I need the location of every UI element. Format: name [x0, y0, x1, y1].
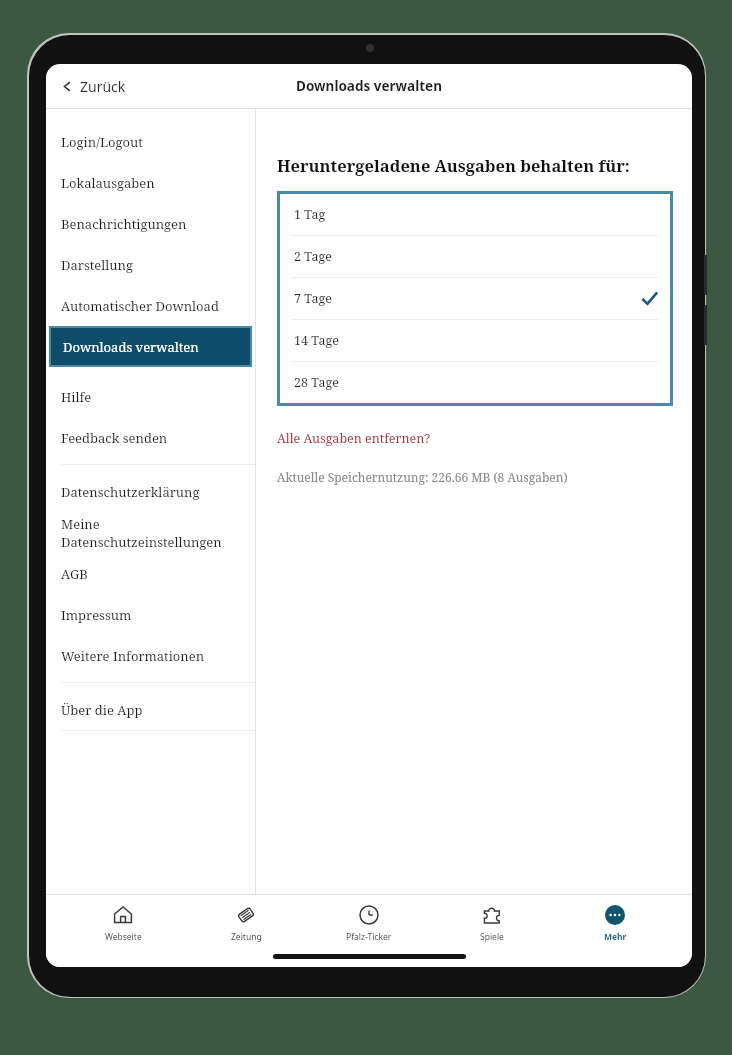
staticText: Impressum [61, 606, 132, 624]
button[interactable]: 7 Tage [280, 278, 670, 319]
staticText: Benachrichtigungen [61, 215, 187, 233]
button[interactable]: Downloads verwalten [51, 328, 250, 365]
staticText: Automatischer Download [61, 297, 219, 315]
button[interactable]: 2 Tage [280, 236, 670, 277]
staticText: Downloads verwalten [63, 338, 199, 356]
staticText: Zeitung [231, 931, 262, 943]
staticText: Meine Datenschutzeinstellungen [61, 515, 255, 551]
staticText: Heruntergeladene Ausgaben behalten für: [277, 154, 630, 176]
staticText: Spiele [480, 931, 504, 943]
staticText: Mehr [604, 931, 627, 943]
staticText: Über die App [61, 701, 143, 719]
button[interactable]: Datenschutzerklärung [46, 471, 255, 512]
staticText: Darstellung [61, 256, 133, 274]
other: Zeitung [236, 905, 256, 925]
button[interactable]: AGB [46, 553, 255, 594]
staticText: Aktuelle Speichernutzung: 226.66 MB (8 A… [277, 469, 568, 485]
button[interactable]: Login/Logout [46, 121, 255, 162]
staticText: Alle Ausgaben entfernen? [277, 430, 431, 447]
button[interactable]: Zeitung [200, 902, 292, 945]
button[interactable]: Pfalz-Ticker [323, 902, 415, 945]
staticText: Login/Logout [61, 133, 143, 151]
button[interactable]: Lokalausgaben [46, 162, 255, 203]
staticText: 2 Tage [294, 248, 332, 265]
staticText: Lokalausgaben [61, 174, 155, 192]
other: Spiele [482, 905, 502, 925]
staticText: 14 Tage [294, 332, 339, 349]
button[interactable]: 1 Tag [280, 194, 670, 235]
button[interactable]: Darstellung [46, 244, 255, 285]
staticText: 1 Tag [294, 206, 326, 223]
button[interactable]: Automatischer Download [46, 285, 255, 326]
staticText: Hilfe [61, 388, 92, 406]
staticText: Feedback senden [61, 429, 168, 447]
staticText: Zurück [80, 77, 126, 96]
button[interactable]: 14 Tage [280, 320, 670, 361]
button[interactable]: Weitere Informationen [46, 635, 255, 676]
button[interactable]: Feedback senden [46, 417, 255, 458]
button[interactable]: Mehr [569, 902, 661, 945]
button[interactable]: Spiele [446, 902, 538, 945]
button[interactable]: Hilfe [46, 376, 255, 417]
button[interactable]: Alle Ausgaben entfernen? [277, 430, 431, 447]
other: Mehr [605, 905, 625, 925]
button[interactable]: Meine Datenschutzeinstellungen [46, 512, 255, 553]
staticText: AGB [61, 565, 88, 583]
staticText: Datenschutzerklärung [61, 483, 200, 501]
staticText: Pfalz-Ticker [346, 931, 392, 943]
button[interactable]: Webseite [77, 902, 169, 945]
staticText: 7 Tage [294, 290, 332, 307]
button[interactable]: Benachrichtigungen [46, 203, 255, 244]
staticText: Webseite [105, 931, 142, 943]
other: Webseite [113, 905, 133, 925]
staticText: Downloads verwalten [296, 77, 442, 95]
button[interactable]: Über die App [46, 689, 255, 730]
button[interactable]: Zurück [56, 73, 132, 100]
staticText: 28 Tage [294, 374, 339, 391]
other: Pfalz-Ticker [359, 905, 379, 925]
button[interactable]: 28 Tage [280, 362, 670, 403]
button[interactable]: Impressum [46, 594, 255, 635]
staticText: Weitere Informationen [61, 647, 205, 665]
